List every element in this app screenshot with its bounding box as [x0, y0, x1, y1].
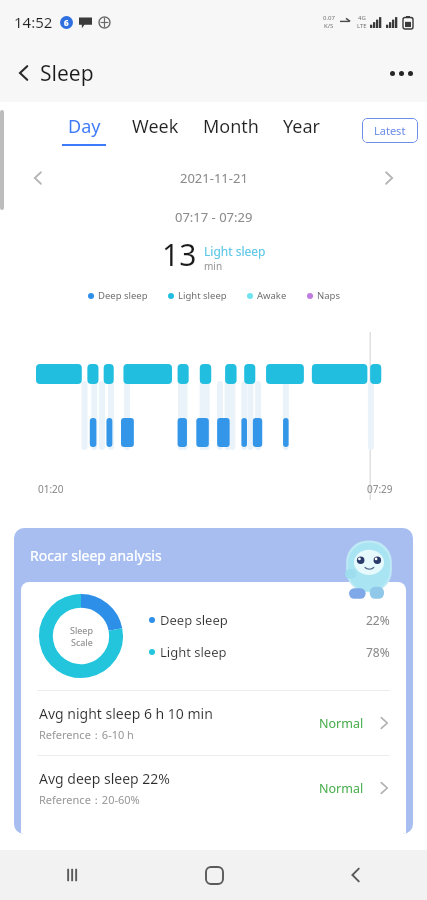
staticText: 14:52 [14, 12, 53, 32]
button[interactable]: Month [201, 110, 261, 150]
staticText: Avg night sleep 6 h 10 min [39, 704, 213, 723]
staticText: 78% [366, 644, 390, 660]
staticText: Deep sleep [160, 611, 228, 629]
staticText: 01:20 [38, 482, 64, 496]
button[interactable]: Back [285, 850, 427, 900]
staticText: 6 [64, 17, 69, 28]
staticText: 4G [358, 14, 366, 22]
button[interactable]: Year [281, 110, 322, 150]
button[interactable]: Day [60, 110, 108, 150]
staticText: 13 [162, 234, 197, 275]
button[interactable]: Next day [373, 162, 405, 194]
staticText: 07:29 [367, 482, 393, 496]
button[interactable]: Home [143, 850, 285, 900]
staticText: 2021-11-21 [180, 169, 248, 187]
staticText: Latest [374, 123, 406, 138]
staticText: Year [283, 114, 320, 139]
staticText: Week [132, 114, 179, 139]
staticText: Rocar sleep analysis [30, 546, 162, 565]
staticText: Month [203, 114, 259, 139]
staticText: 07:17 - 07:29 [175, 208, 253, 226]
button[interactable]: Avg deep sleep 22% [21, 756, 406, 820]
button[interactable]: Previous day [22, 162, 54, 194]
button[interactable]: Back [0, 55, 42, 91]
button[interactable]: Week [130, 110, 181, 150]
staticText: Naps [317, 289, 340, 302]
button[interactable]: More options [376, 57, 427, 90]
staticText: LTE [357, 22, 367, 30]
staticText: K/S [324, 22, 334, 30]
staticText: Light sleep [160, 643, 227, 661]
staticText: Light sleep [204, 243, 266, 259]
button[interactable]: Recent apps [0, 850, 143, 900]
staticText: Sleep [70, 624, 93, 636]
staticText: Scale [71, 636, 93, 648]
staticText: Sleep [40, 59, 94, 88]
staticText: Normal [319, 780, 364, 797]
button[interactable]: Latest [362, 118, 418, 143]
staticText: Day [68, 114, 101, 139]
button[interactable]: Avg night sleep 6 h 10 min [21, 691, 406, 755]
staticText: Awake [257, 289, 287, 302]
staticText: 22% [366, 612, 390, 628]
staticText: 0.07 [323, 14, 335, 22]
staticText: Avg deep sleep 22% [39, 769, 170, 788]
staticText: Light sleep [178, 289, 227, 302]
staticText: Normal [319, 715, 364, 732]
staticText: Reference：20-60% [39, 792, 140, 807]
staticText: min [204, 259, 223, 273]
staticText: Deep sleep [98, 289, 148, 302]
staticText: Reference：6-10 h [39, 727, 134, 742]
